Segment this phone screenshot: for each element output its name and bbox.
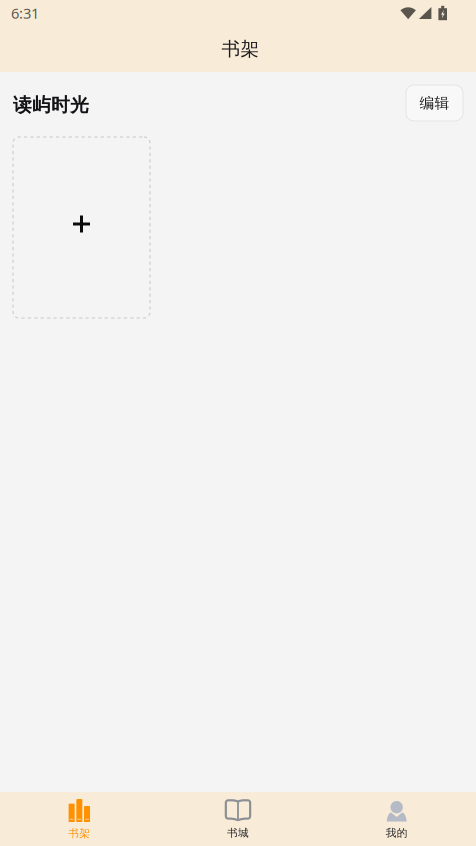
button[interactable]: Add book [13,137,150,318]
staticText: 编辑 [419,94,449,112]
staticText: 读屿时光 [13,93,89,116]
staticText: 书架 [68,827,90,840]
staticText: 6:31 [11,3,39,23]
button[interactable]: 我的 [317,792,476,846]
button[interactable]: 编辑 [406,85,463,121]
staticText: 我的 [386,826,408,840]
staticText: 书城 [227,826,249,840]
button[interactable]: 书城 [159,792,317,846]
button[interactable]: 书架 [0,792,159,846]
staticText: 书架 [221,37,259,60]
